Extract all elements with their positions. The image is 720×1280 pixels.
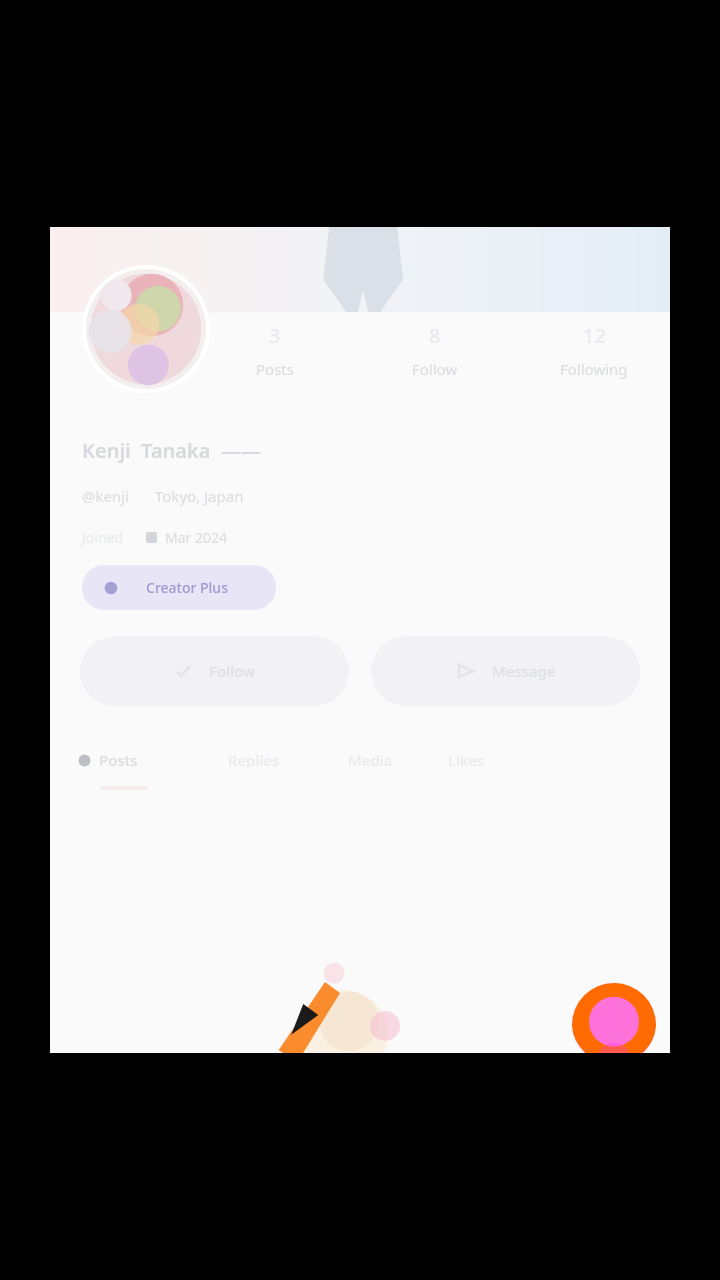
staticText: 12: [583, 322, 606, 349]
staticText: Creator Plus: [146, 578, 228, 597]
staticText: Posts: [256, 359, 294, 379]
staticText: Follow: [209, 661, 256, 681]
staticText: 8: [429, 322, 441, 349]
staticText: Media: [348, 750, 393, 770]
button[interactable]: Posts: [78, 750, 228, 790]
button[interactable]: Replies: [228, 750, 348, 770]
staticText: Posts: [99, 750, 138, 770]
staticText: 3: [269, 322, 281, 349]
button[interactable]: Media: [348, 750, 448, 770]
button[interactable]: Creator Plus: [82, 565, 276, 610]
button[interactable]: Create post: [572, 983, 656, 1053]
staticText: Tokyo, Japan: [155, 486, 244, 506]
button[interactable]: 3: [225, 318, 325, 383]
button[interactable]: Profile photo: [86, 269, 206, 389]
button[interactable]: 12: [544, 318, 644, 383]
staticText: Mar 2024: [165, 528, 228, 547]
staticText: Likes: [448, 750, 485, 770]
staticText: Kenji Tanaka ——: [82, 437, 261, 464]
staticText: Message: [492, 661, 556, 681]
staticText: @kenji: [82, 486, 129, 506]
button[interactable]: Likes: [448, 750, 538, 770]
staticText: Following: [560, 359, 628, 379]
button[interactable]: 8: [385, 318, 485, 383]
staticText: Follow: [412, 359, 458, 379]
staticText: Replies: [228, 750, 280, 770]
staticText: Joined: [82, 528, 124, 547]
